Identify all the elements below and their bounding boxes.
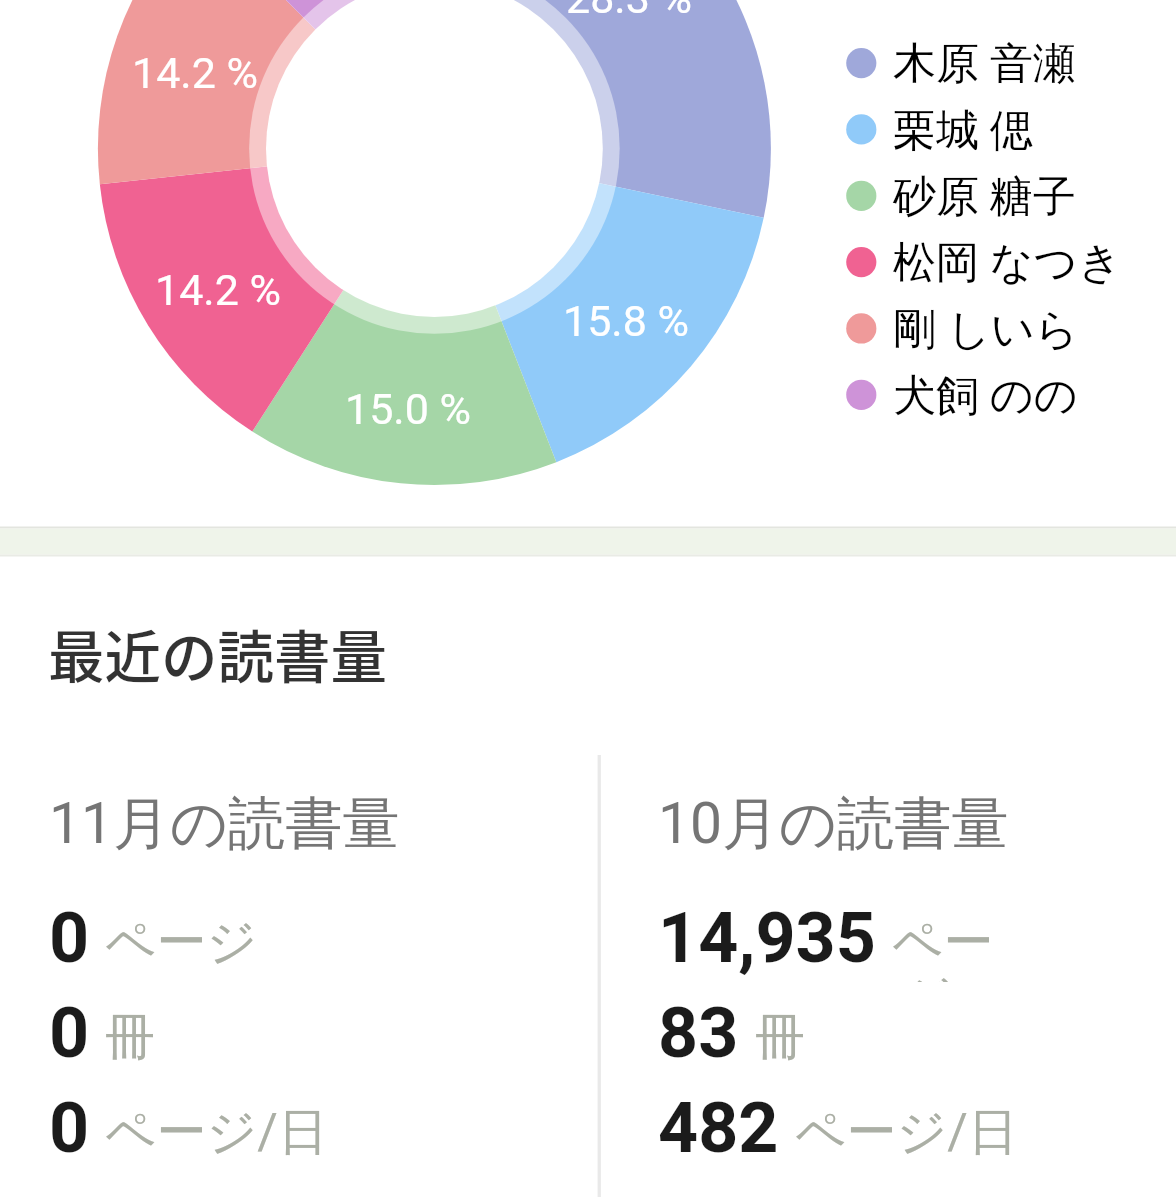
staticText: 15.8 % bbox=[563, 296, 689, 346]
staticText: 犬飼 のの bbox=[893, 369, 1078, 423]
button[interactable]: 10月の読書量 bbox=[620, 770, 1176, 1190]
staticText: 14.2 % bbox=[132, 48, 258, 98]
staticText: 15.0 % bbox=[345, 384, 471, 434]
button[interactable]: 著者別の読書割合グラフ bbox=[0, 0, 1176, 527]
staticText: 最近の読書量 bbox=[48, 612, 387, 694]
button[interactable]: 11月の読書量 bbox=[20, 770, 580, 1190]
staticText: 14.2 % bbox=[155, 265, 281, 315]
staticText: 冊 bbox=[105, 1006, 155, 1069]
staticText: ペー bbox=[892, 911, 994, 974]
staticText: 0 bbox=[49, 1087, 90, 1169]
staticText: 0 bbox=[49, 992, 90, 1074]
staticText: 28.3 % bbox=[566, 0, 692, 23]
staticText: 482 bbox=[658, 1087, 779, 1169]
staticText: 剛 しいら bbox=[893, 303, 1079, 357]
staticText: 0 bbox=[49, 897, 90, 979]
staticText: ページ/日 bbox=[795, 1101, 1018, 1164]
staticText: 83 bbox=[658, 992, 739, 1074]
staticText: 冊 bbox=[755, 1006, 805, 1069]
staticText: 14,935 bbox=[658, 897, 876, 979]
staticText: 10月の読書量 bbox=[658, 788, 1009, 860]
staticText: 松岡 なつき bbox=[893, 236, 1122, 290]
staticText: ページ/日 bbox=[105, 1101, 328, 1164]
staticText: ジ bbox=[904, 966, 956, 982]
staticText: 砂原 糖子 bbox=[893, 170, 1076, 224]
staticText: ページ bbox=[105, 911, 258, 974]
staticText: 木原 音瀬 bbox=[893, 37, 1076, 91]
staticText: 11月の読書量 bbox=[49, 788, 400, 860]
staticText: 栗城 偲 bbox=[893, 104, 1033, 158]
